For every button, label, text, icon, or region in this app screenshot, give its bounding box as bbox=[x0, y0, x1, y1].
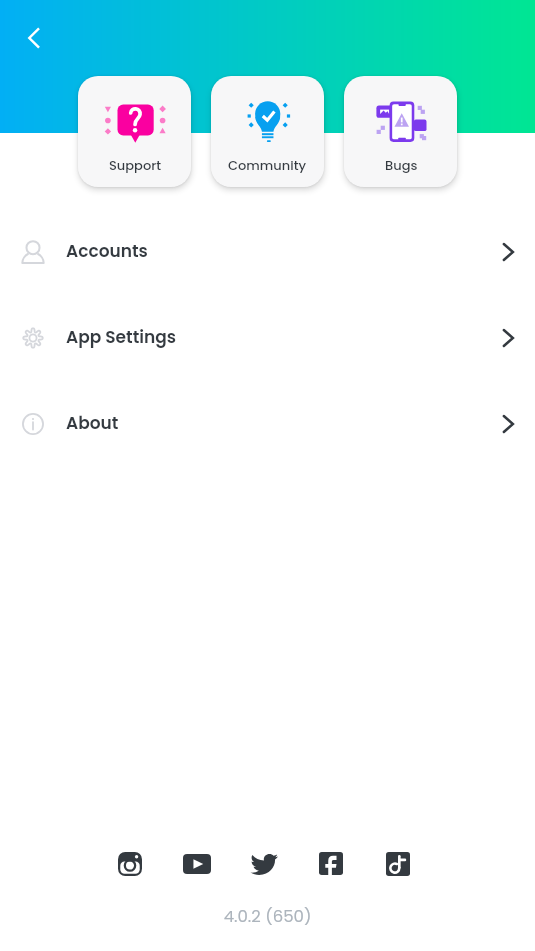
button[interactable]: Instagram bbox=[113, 847, 147, 881]
staticText: Community bbox=[228, 156, 307, 174]
button[interactable]: Accounts bbox=[0, 209, 535, 295]
staticText: App Settings bbox=[66, 325, 177, 349]
staticText: Accounts bbox=[66, 239, 148, 263]
button[interactable]: Twitter bbox=[247, 847, 281, 881]
button[interactable]: App Settings bbox=[0, 295, 535, 381]
staticText: About bbox=[66, 411, 119, 435]
button[interactable]: Community bbox=[211, 76, 324, 187]
button[interactable]: Back bbox=[10, 14, 58, 62]
staticText: Support bbox=[109, 156, 162, 174]
button[interactable]: TikTok bbox=[381, 847, 415, 881]
button[interactable]: Support bbox=[78, 76, 191, 187]
staticText: Bugs bbox=[385, 156, 418, 174]
staticText: 4.0.2 (650) bbox=[0, 905, 535, 928]
button[interactable]: Bugs bbox=[344, 76, 457, 187]
button[interactable]: YouTube bbox=[180, 847, 214, 881]
button[interactable]: Facebook bbox=[314, 847, 348, 881]
button[interactable]: About bbox=[0, 381, 535, 467]
